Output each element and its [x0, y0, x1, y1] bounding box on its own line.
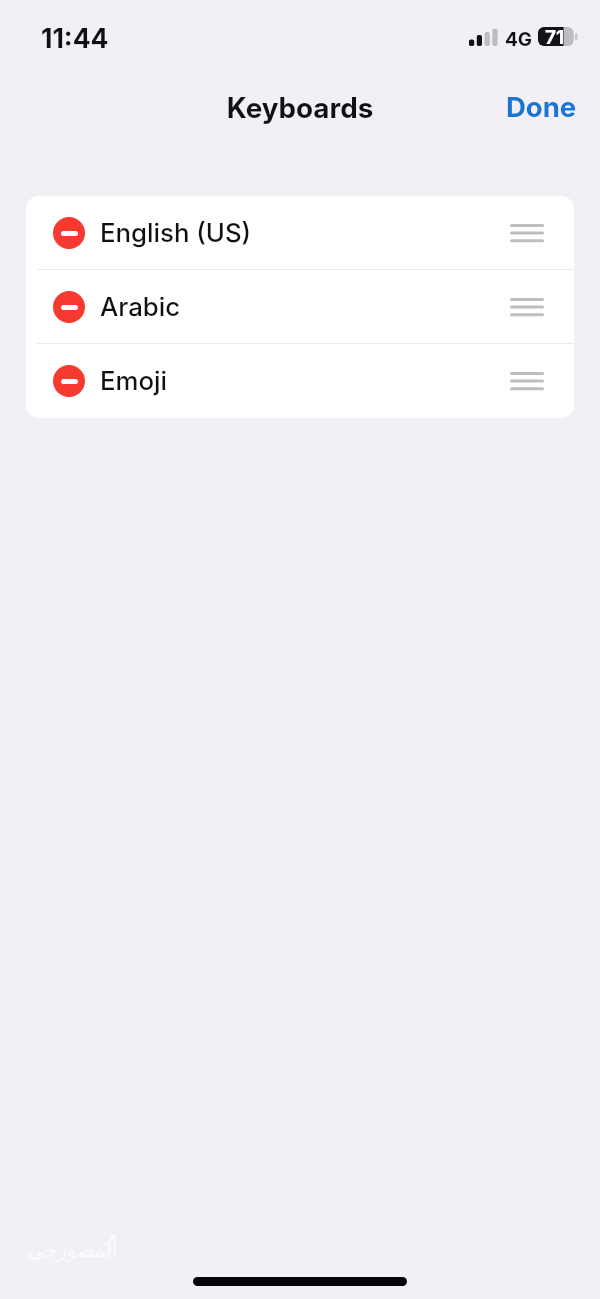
- staticText: 4G: [505, 28, 533, 51]
- staticText: Done: [506, 90, 577, 123]
- button[interactable]: Remove Emoji: [53, 365, 85, 397]
- button[interactable]: Remove Emoji: [26, 344, 574, 418]
- button[interactable]: Remove English (US): [26, 196, 574, 270]
- other: Battery 71 percent: [538, 27, 579, 50]
- button[interactable]: Reorder English (US): [499, 205, 555, 261]
- button[interactable]: Done: [491, 80, 591, 132]
- staticText: Arabic: [100, 291, 181, 322]
- staticText: Emoji: [100, 365, 168, 396]
- button[interactable]: Remove English (US): [53, 217, 85, 249]
- button[interactable]: Remove Arabic: [53, 291, 85, 323]
- button[interactable]: Reorder Arabic: [499, 279, 555, 335]
- staticText: 71: [545, 26, 565, 49]
- staticText: المصورجي: [28, 1238, 118, 1261]
- button[interactable]: Reorder Emoji: [499, 353, 555, 409]
- staticText: Keyboards: [0, 91, 600, 125]
- button[interactable]: Remove Arabic: [26, 270, 574, 344]
- staticText: 11:44: [41, 22, 109, 54]
- other: Cellular signal: 2 of 4 bars: [469, 28, 501, 46]
- staticText: English (US): [100, 217, 252, 248]
